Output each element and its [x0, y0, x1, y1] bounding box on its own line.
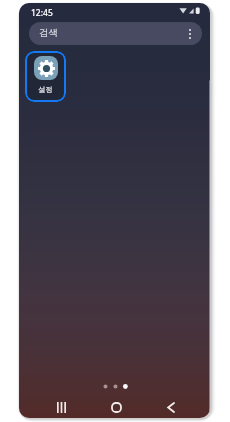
button[interactable]: Back [158, 397, 183, 418]
button[interactable]: 설정 [25, 51, 66, 102]
button[interactable]: 검색 [29, 22, 202, 45]
staticText: 12:45 [31, 7, 53, 19]
button[interactable]: Recent apps [49, 397, 74, 418]
staticText: 검색 [39, 27, 58, 39]
button[interactable]: More options [183, 27, 197, 41]
staticText: 설정 [38, 85, 53, 94]
button[interactable]: Home [104, 397, 129, 418]
